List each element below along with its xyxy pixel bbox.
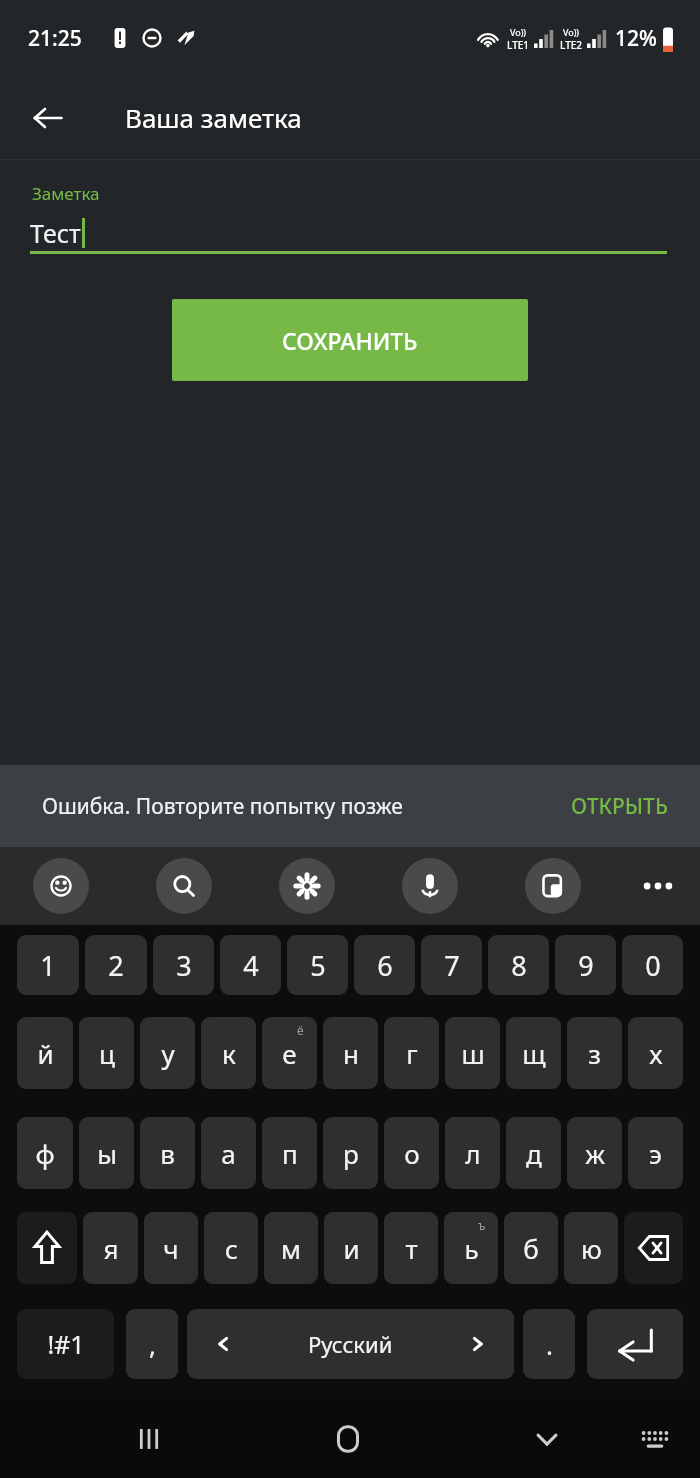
button[interactable]: г [384, 1017, 439, 1089]
button[interactable]: э [628, 1117, 683, 1189]
button[interactable]: Search [156, 858, 212, 914]
button[interactable]: ч [144, 1212, 198, 1284]
staticText: Vo)) [563, 26, 580, 38]
button[interactable]: More options [630, 858, 686, 914]
staticText: в [160, 1136, 175, 1171]
button[interactable]: р [323, 1117, 378, 1189]
button[interactable]: 1 [17, 935, 79, 995]
staticText: к [222, 1036, 236, 1071]
button[interactable]: у [140, 1017, 195, 1089]
staticText: Русский [308, 1329, 393, 1359]
staticText: ф [35, 1136, 55, 1171]
button[interactable]: Back [18, 88, 78, 148]
button[interactable]: ж [567, 1117, 622, 1189]
staticText: Ваша заметка [125, 100, 302, 135]
button[interactable]: 7 [421, 935, 482, 995]
button[interactable]: 5 [287, 935, 348, 995]
staticText: Заметка [32, 182, 100, 205]
button[interactable]: щ [506, 1017, 561, 1089]
button[interactable]: Emoji [33, 858, 89, 914]
button[interactable]: ю [564, 1212, 618, 1284]
staticText: 8 [511, 947, 527, 984]
button[interactable]: с [204, 1212, 258, 1284]
button[interactable]: ь [444, 1212, 498, 1284]
button[interactable]: к [201, 1017, 256, 1089]
staticText: н [343, 1036, 359, 1071]
button[interactable]: . [523, 1309, 575, 1379]
button[interactable]: д [506, 1117, 561, 1189]
staticText: ОТКРЫТЬ [571, 792, 668, 821]
button[interactable]: з [567, 1017, 622, 1089]
staticText: ы [97, 1136, 117, 1171]
staticText: . [546, 1327, 553, 1362]
button[interactable]: Settings [279, 858, 335, 914]
button[interactable]: Shift [17, 1212, 77, 1284]
button[interactable]: м [264, 1212, 318, 1284]
button[interactable]: Change keyboard [624, 1408, 686, 1470]
button[interactable]: н [323, 1017, 378, 1089]
button[interactable]: , [126, 1309, 178, 1379]
button[interactable]: ф [17, 1117, 73, 1189]
button[interactable]: х [628, 1017, 683, 1089]
button[interactable]: 3 [153, 935, 214, 995]
staticText: 2 [108, 947, 124, 984]
button[interactable]: 0 [622, 935, 683, 995]
button[interactable]: !#1 [17, 1309, 114, 1379]
button[interactable]: п [262, 1117, 317, 1189]
button[interactable]: л [445, 1117, 500, 1189]
staticText: э [649, 1136, 662, 1171]
staticText: м [281, 1231, 301, 1266]
button[interactable]: 6 [354, 935, 415, 995]
button[interactable]: Русский [187, 1309, 514, 1379]
button[interactable]: ш [445, 1017, 500, 1089]
staticText: 6 [377, 947, 393, 984]
staticText: о [404, 1136, 420, 1171]
staticText: з [588, 1036, 601, 1071]
staticText: б [523, 1231, 539, 1266]
button[interactable]: СОХРАНИТЬ [172, 299, 528, 381]
staticText: 1 [40, 947, 56, 984]
staticText: LTE2 [560, 38, 583, 52]
button[interactable]: я [83, 1212, 138, 1284]
staticText: п [282, 1136, 298, 1171]
staticText: л [465, 1136, 481, 1171]
button[interactable]: Home [317, 1408, 379, 1470]
button[interactable]: е [262, 1017, 317, 1089]
button[interactable]: и [324, 1212, 378, 1284]
staticText: щ [522, 1036, 546, 1071]
button[interactable]: Voice input [402, 858, 458, 914]
staticText: LTE1 [507, 38, 530, 52]
button[interactable]: 2 [85, 935, 147, 995]
staticText: , [149, 1327, 156, 1362]
staticText: ё [297, 1022, 304, 1038]
button[interactable]: Translate [525, 858, 581, 914]
staticText: х [649, 1036, 663, 1071]
staticText: ъ [478, 1217, 486, 1233]
staticText: я [103, 1231, 119, 1266]
staticText: Vo)) [510, 26, 527, 38]
button[interactable]: ОТКРЫТЬ [563, 784, 676, 829]
button[interactable]: Enter [587, 1309, 683, 1379]
staticText: 12% [615, 24, 657, 53]
staticText: Тест [30, 216, 81, 250]
button[interactable]: о [384, 1117, 439, 1189]
button[interactable]: 8 [488, 935, 549, 995]
button[interactable]: 4 [220, 935, 281, 995]
button[interactable]: Recent apps [118, 1408, 180, 1470]
button[interactable]: а [201, 1117, 256, 1189]
button[interactable]: б [504, 1212, 558, 1284]
staticText: 5 [310, 947, 326, 984]
button[interactable]: й [17, 1017, 73, 1089]
staticText: СОХРАНИТЬ [282, 325, 418, 356]
button[interactable]: ы [79, 1117, 134, 1189]
button[interactable]: Backspace [624, 1212, 683, 1284]
button[interactable]: 9 [555, 935, 616, 995]
button[interactable]: Тест [30, 215, 667, 251]
button[interactable]: в [140, 1117, 195, 1189]
button[interactable]: ц [79, 1017, 134, 1089]
staticText: й [37, 1036, 54, 1071]
staticText: 4 [243, 947, 259, 984]
staticText: ь [464, 1231, 479, 1266]
button[interactable]: т [384, 1212, 438, 1284]
button[interactable]: Hide keyboard [516, 1408, 578, 1470]
